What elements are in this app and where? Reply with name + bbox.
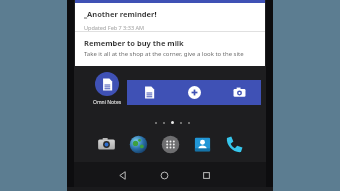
- button[interactable]: Contacts: [186, 133, 218, 155]
- button[interactable]: Recents: [196, 165, 216, 185]
- button[interactable]: Home: [154, 165, 174, 185]
- staticText: Omni Notes: [93, 99, 122, 106]
- button[interactable]: Back: [112, 165, 132, 185]
- button[interactable]: New note: [127, 80, 172, 105]
- button[interactable]: Omni Notes: [87, 72, 127, 106]
- staticText: ‗Another reminder!: [84, 9, 157, 19]
- button[interactable]: Camera: [217, 80, 261, 105]
- button[interactable]: Browser: [122, 133, 154, 155]
- button[interactable]: Phone: [218, 133, 250, 155]
- button[interactable]: Remember to buy the milk: [84, 38, 259, 58]
- staticText: Remember to buy the milk: [84, 38, 184, 48]
- button[interactable]: ‗Another reminder!: [75, 0, 265, 66]
- button[interactable]: Camera: [90, 133, 122, 155]
- staticText: Updated Feb 7 3:33 AM: [84, 24, 144, 31]
- button[interactable]: Add: [172, 80, 217, 105]
- button[interactable]: ‗Another reminder!: [84, 9, 259, 31]
- button[interactable]: Apps: [154, 133, 186, 155]
- staticText: Take it all at the shop at the corner, g…: [84, 50, 244, 58]
